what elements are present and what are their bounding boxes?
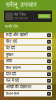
staticText: त्वचा xyxy=(6,59,12,64)
staticText: सभी रोग xyxy=(5,25,18,30)
staticText: आँखों की देखभाल xyxy=(6,85,32,90)
staticText: गले में दर्द xyxy=(6,78,19,83)
staticText: पेट दर्द xyxy=(6,46,15,51)
staticText: सिर दर्द xyxy=(6,39,17,44)
button[interactable]: दांत दर्द xyxy=(4,71,52,77)
staticText: INSTALL xyxy=(39,15,49,18)
button[interactable]: गले में दर्द xyxy=(4,78,52,83)
button[interactable]: बुखार xyxy=(4,52,52,57)
button[interactable]: वजन कम xyxy=(4,91,52,96)
staticText: बुखार xyxy=(6,52,14,57)
button[interactable]: Ad Title xyxy=(4,10,52,22)
staticText: सर्दी और खांसी xyxy=(6,33,28,38)
button[interactable]: सिर दर्द xyxy=(4,39,52,44)
button[interactable]: पेट दर्द xyxy=(4,45,52,51)
staticText: दांत दर्द xyxy=(6,72,16,77)
button[interactable]: त्वचा xyxy=(4,58,52,64)
button[interactable]: सर्दी और खांसी xyxy=(4,32,52,38)
staticText: वजन कम xyxy=(6,91,19,96)
staticText: Sponsored xyxy=(14,17,28,20)
button[interactable]: बाल झड़ना xyxy=(4,65,52,70)
staticText: बाल झड़ना xyxy=(6,65,21,70)
staticText: घरेलू उपचार xyxy=(6,1,37,9)
staticText: Ad Title xyxy=(14,13,26,16)
button[interactable]: आँखों की देखभाल xyxy=(4,84,52,90)
